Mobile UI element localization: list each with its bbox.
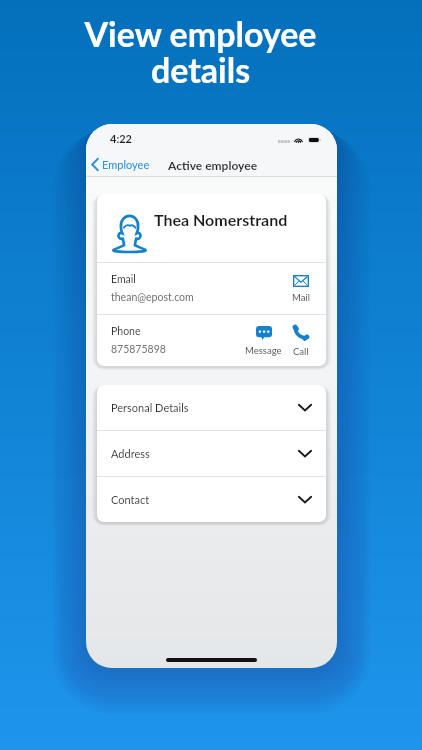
- staticText: Email: [111, 273, 136, 286]
- staticText: Employee: [102, 158, 150, 171]
- button[interactable]: Employee: [89, 155, 152, 174]
- staticText: View employee details: [84, 13, 317, 91]
- staticText: Call: [293, 346, 309, 357]
- staticText: 4:22: [110, 132, 132, 145]
- button[interactable]: Call: [289, 324, 313, 357]
- button[interactable]: Address: [97, 431, 326, 476]
- staticText: Address: [111, 447, 298, 460]
- staticText: Thea Nomerstrand: [154, 210, 288, 229]
- staticText: thean@epost.com: [111, 291, 194, 304]
- button[interactable]: Thea Nomerstrand: [97, 194, 326, 262]
- button[interactable]: Mail: [289, 275, 313, 303]
- staticText: Mail: [292, 292, 310, 303]
- button[interactable]: Personal Details: [97, 385, 326, 430]
- button[interactable]: Message: [242, 326, 285, 356]
- staticText: Contact: [111, 493, 298, 506]
- staticText: Message: [245, 345, 282, 356]
- staticText: Active employee: [168, 158, 258, 172]
- button[interactable]: Contact: [97, 477, 326, 522]
- staticText: 875875898: [111, 343, 166, 356]
- staticText: Personal Details: [111, 401, 298, 414]
- staticText: Phone: [111, 325, 141, 338]
